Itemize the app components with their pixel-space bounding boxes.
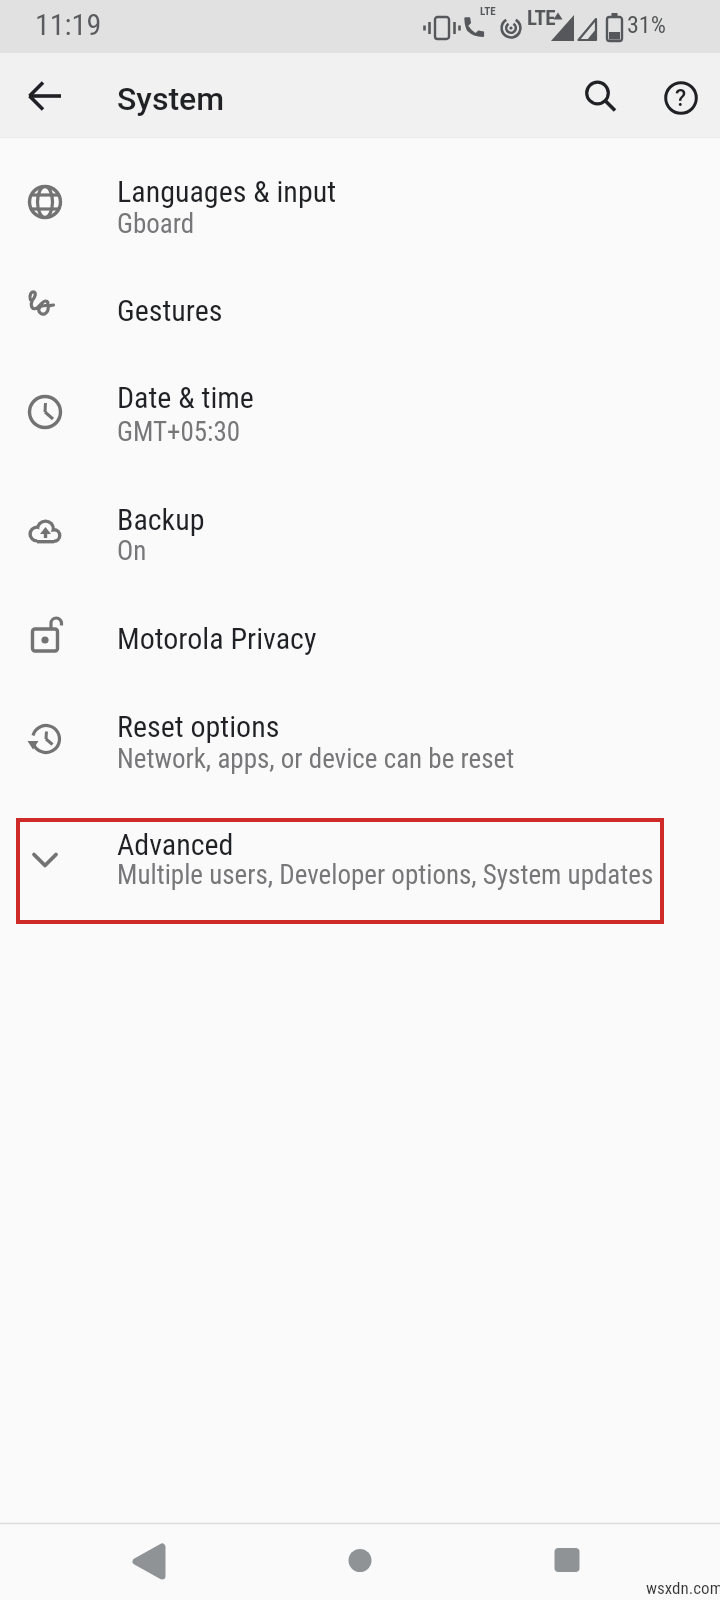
staticText: Backup: [117, 502, 205, 537]
staticText: Multiple users, Developer options, Syste…: [117, 859, 654, 891]
staticText: 11:19: [35, 7, 102, 42]
button[interactable]: [117, 1529, 181, 1593]
staticText: Motorola Privacy: [117, 621, 317, 656]
staticText: GMT+05:30: [117, 416, 241, 448]
staticText: Languages & input: [117, 174, 337, 209]
staticText: 31%: [627, 11, 666, 39]
button[interactable]: [21, 72, 69, 120]
button[interactable]: Gestures: [0, 262, 720, 358]
staticText: On: [117, 535, 147, 567]
staticText: Network, apps, or device can be reset: [117, 743, 515, 775]
button[interactable]: Backup: [0, 480, 720, 590]
button[interactable]: ?: [656, 73, 706, 123]
staticText: System: [117, 80, 225, 118]
button[interactable]: [574, 70, 624, 120]
staticText: Reset options: [117, 709, 280, 744]
staticText: LTE: [480, 5, 496, 18]
button[interactable]: Motorola Privacy: [0, 590, 720, 686]
button[interactable]: [535, 1529, 599, 1593]
staticText: LTE: [527, 6, 556, 31]
staticText: ?: [675, 85, 687, 112]
button[interactable]: [328, 1529, 392, 1593]
staticText: Date & time: [117, 380, 254, 415]
staticText: Advanced: [117, 827, 234, 862]
staticText: wsxdn.com: [646, 1578, 720, 1598]
button[interactable]: Reset options: [0, 686, 720, 798]
staticText: Gboard: [117, 208, 195, 240]
button[interactable]: Date & time: [0, 358, 720, 470]
staticText: Gestures: [117, 293, 223, 328]
button[interactable]: Languages & input: [0, 150, 720, 262]
button[interactable]: Advanced: [0, 798, 720, 926]
